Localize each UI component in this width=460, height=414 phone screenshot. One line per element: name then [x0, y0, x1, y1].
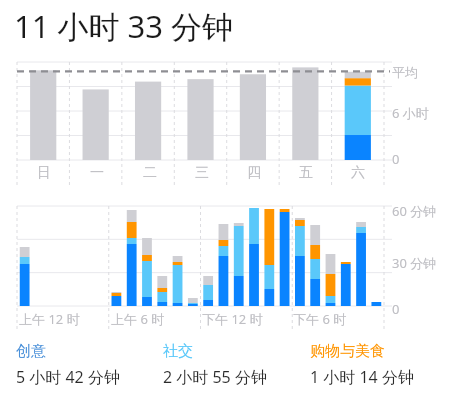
staticText: 五: [299, 164, 313, 182]
staticText: 二: [143, 164, 157, 182]
staticText: 四: [247, 164, 261, 182]
staticText: 上午 12 时: [19, 310, 80, 328]
staticText: 11 小时 33 分钟: [14, 5, 234, 47]
staticText: 2 小时 55 分钟: [163, 366, 267, 388]
staticText: 六: [351, 164, 365, 182]
button[interactable]: 创意: [16, 342, 163, 388]
staticText: 下午 12 时: [202, 310, 263, 328]
staticText: 60 分钟: [392, 202, 437, 220]
staticText: 平均: [392, 64, 418, 80]
staticText: 三: [195, 164, 209, 182]
staticText: 一: [90, 164, 104, 182]
staticText: 5 小时 42 分钟: [16, 366, 120, 388]
staticText: 0: [392, 300, 400, 318]
staticText: 购物与美食: [310, 342, 385, 361]
button[interactable]: 购物与美食: [310, 342, 450, 388]
button[interactable]: 60 分钟: [0, 202, 460, 332]
staticText: 社交: [163, 342, 193, 361]
staticText: 创意: [16, 342, 46, 361]
button[interactable]: 平均: [0, 52, 460, 190]
staticText: 30 分钟: [392, 254, 437, 272]
staticText: 下午 6 时: [293, 310, 347, 328]
staticText: 上午 6 时: [111, 310, 165, 328]
staticText: 6 小时: [392, 104, 429, 122]
staticText: 0: [392, 150, 400, 168]
staticText: 1 小时 14 分钟: [310, 366, 414, 388]
button[interactable]: 社交: [163, 342, 310, 388]
staticText: 日: [37, 164, 51, 182]
